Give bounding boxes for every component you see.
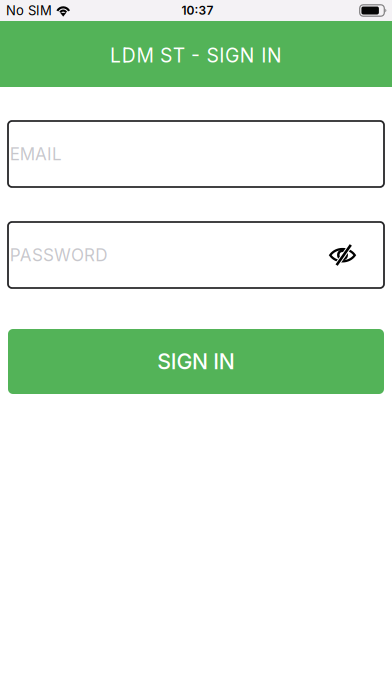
staticText: SIGN IN [157,349,235,374]
button[interactable]: Show password [321,244,356,266]
staticText: PASSWORD [10,245,107,265]
staticText: 10:37 [181,3,213,18]
staticText: EMAIL [10,144,62,164]
staticText: LDM ST - SIGN IN [110,44,282,67]
button[interactable]: SIGN IN [8,329,384,394]
staticText: No SIM [6,3,52,18]
